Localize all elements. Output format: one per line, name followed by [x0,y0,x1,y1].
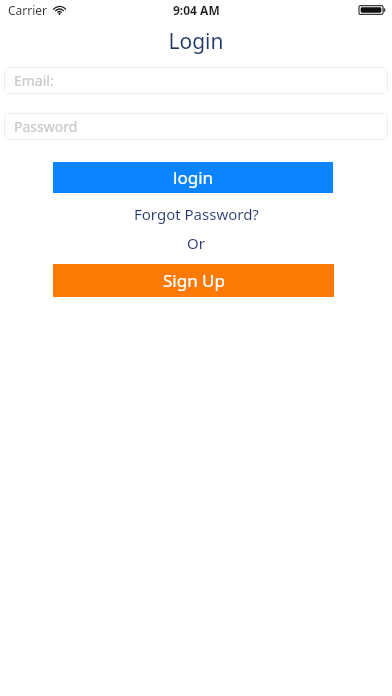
button[interactable]: Sign Up [53,264,334,297]
staticText: Login [0,27,392,56]
button[interactable]: Forgot Password? [128,203,265,225]
staticText: Carrier [8,2,48,18]
staticText: Password [14,117,78,136]
button[interactable]: login [53,162,333,193]
staticText: Or [0,233,392,253]
staticText: 9:04 AM [173,2,220,18]
staticText: login [173,166,214,189]
button[interactable]: Password [4,113,388,140]
staticText: Sign Up [163,269,225,292]
button[interactable]: Email: [4,67,388,94]
staticText: Email: [14,71,54,90]
staticText: Forgot Password? [134,204,259,224]
